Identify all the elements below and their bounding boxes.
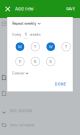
button[interactable]: Does not repeat [0,118,80,132]
staticText: SAVE [66,7,75,11]
staticText: Forever [12,71,24,75]
button[interactable]: M [15,42,25,51]
button[interactable]: Forever [7,66,73,80]
staticText: DONE [55,82,66,86]
staticText: F [19,59,21,64]
button[interactable]: S [31,57,40,66]
button[interactable]: Repeat weekly [7,17,73,30]
button[interactable]: W [46,42,55,51]
staticText: Does not repeat [10,123,35,127]
staticText: S [49,59,52,64]
button[interactable]: Close [2,1,13,16]
staticText: Every [12,32,21,36]
button[interactable]: F [15,57,25,66]
staticText: S [34,59,37,64]
staticText: Repeat weekly [12,21,36,26]
staticText: weeks [30,32,41,36]
staticText: ADD LOCATION [10,109,32,113]
staticText: W [49,44,53,49]
staticText: Add new [15,6,34,12]
button[interactable]: T [61,42,71,51]
button[interactable]: T [31,42,40,51]
button[interactable]: SAVE [63,4,78,14]
button[interactable]: S [46,57,55,66]
staticText: M [18,44,22,49]
staticText: T [65,44,68,49]
staticText: T [34,44,37,49]
button[interactable]: DONE [52,80,69,88]
button[interactable]: 1 [23,32,27,37]
staticText: 1 [25,32,26,37]
button[interactable]: ADD LOCATION [0,104,80,118]
